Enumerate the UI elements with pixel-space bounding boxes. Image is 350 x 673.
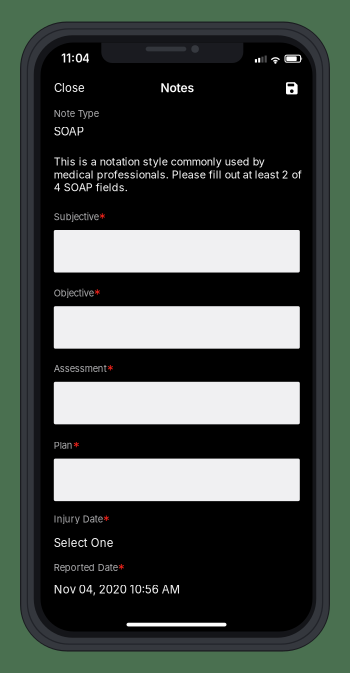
staticText: Plan (54, 440, 73, 451)
staticText: * (99, 210, 106, 226)
staticText: Nov 04, 2020 10:56 AM (54, 583, 180, 596)
staticText: SOAP (54, 125, 84, 138)
staticText: This is a notation style commonly used b… (54, 155, 302, 194)
staticText: 11:04 (61, 51, 90, 65)
staticText: Objective (54, 287, 94, 299)
staticText: Note Type (54, 108, 99, 119)
staticText: Subjective (54, 211, 99, 222)
staticText: * (118, 561, 125, 577)
button[interactable]: Close (49, 73, 90, 103)
staticText: * (73, 439, 80, 455)
staticText: Notes (160, 81, 194, 95)
staticText: * (94, 286, 101, 302)
staticText: Select One (54, 536, 114, 550)
button[interactable]: Save (280, 76, 304, 100)
staticText: * (107, 362, 114, 378)
staticText: Reported Date (54, 562, 118, 573)
staticText: Close (54, 81, 85, 95)
staticText: Assessment (54, 363, 107, 374)
staticText: * (103, 512, 110, 529)
staticText: Injury Date (54, 513, 103, 525)
